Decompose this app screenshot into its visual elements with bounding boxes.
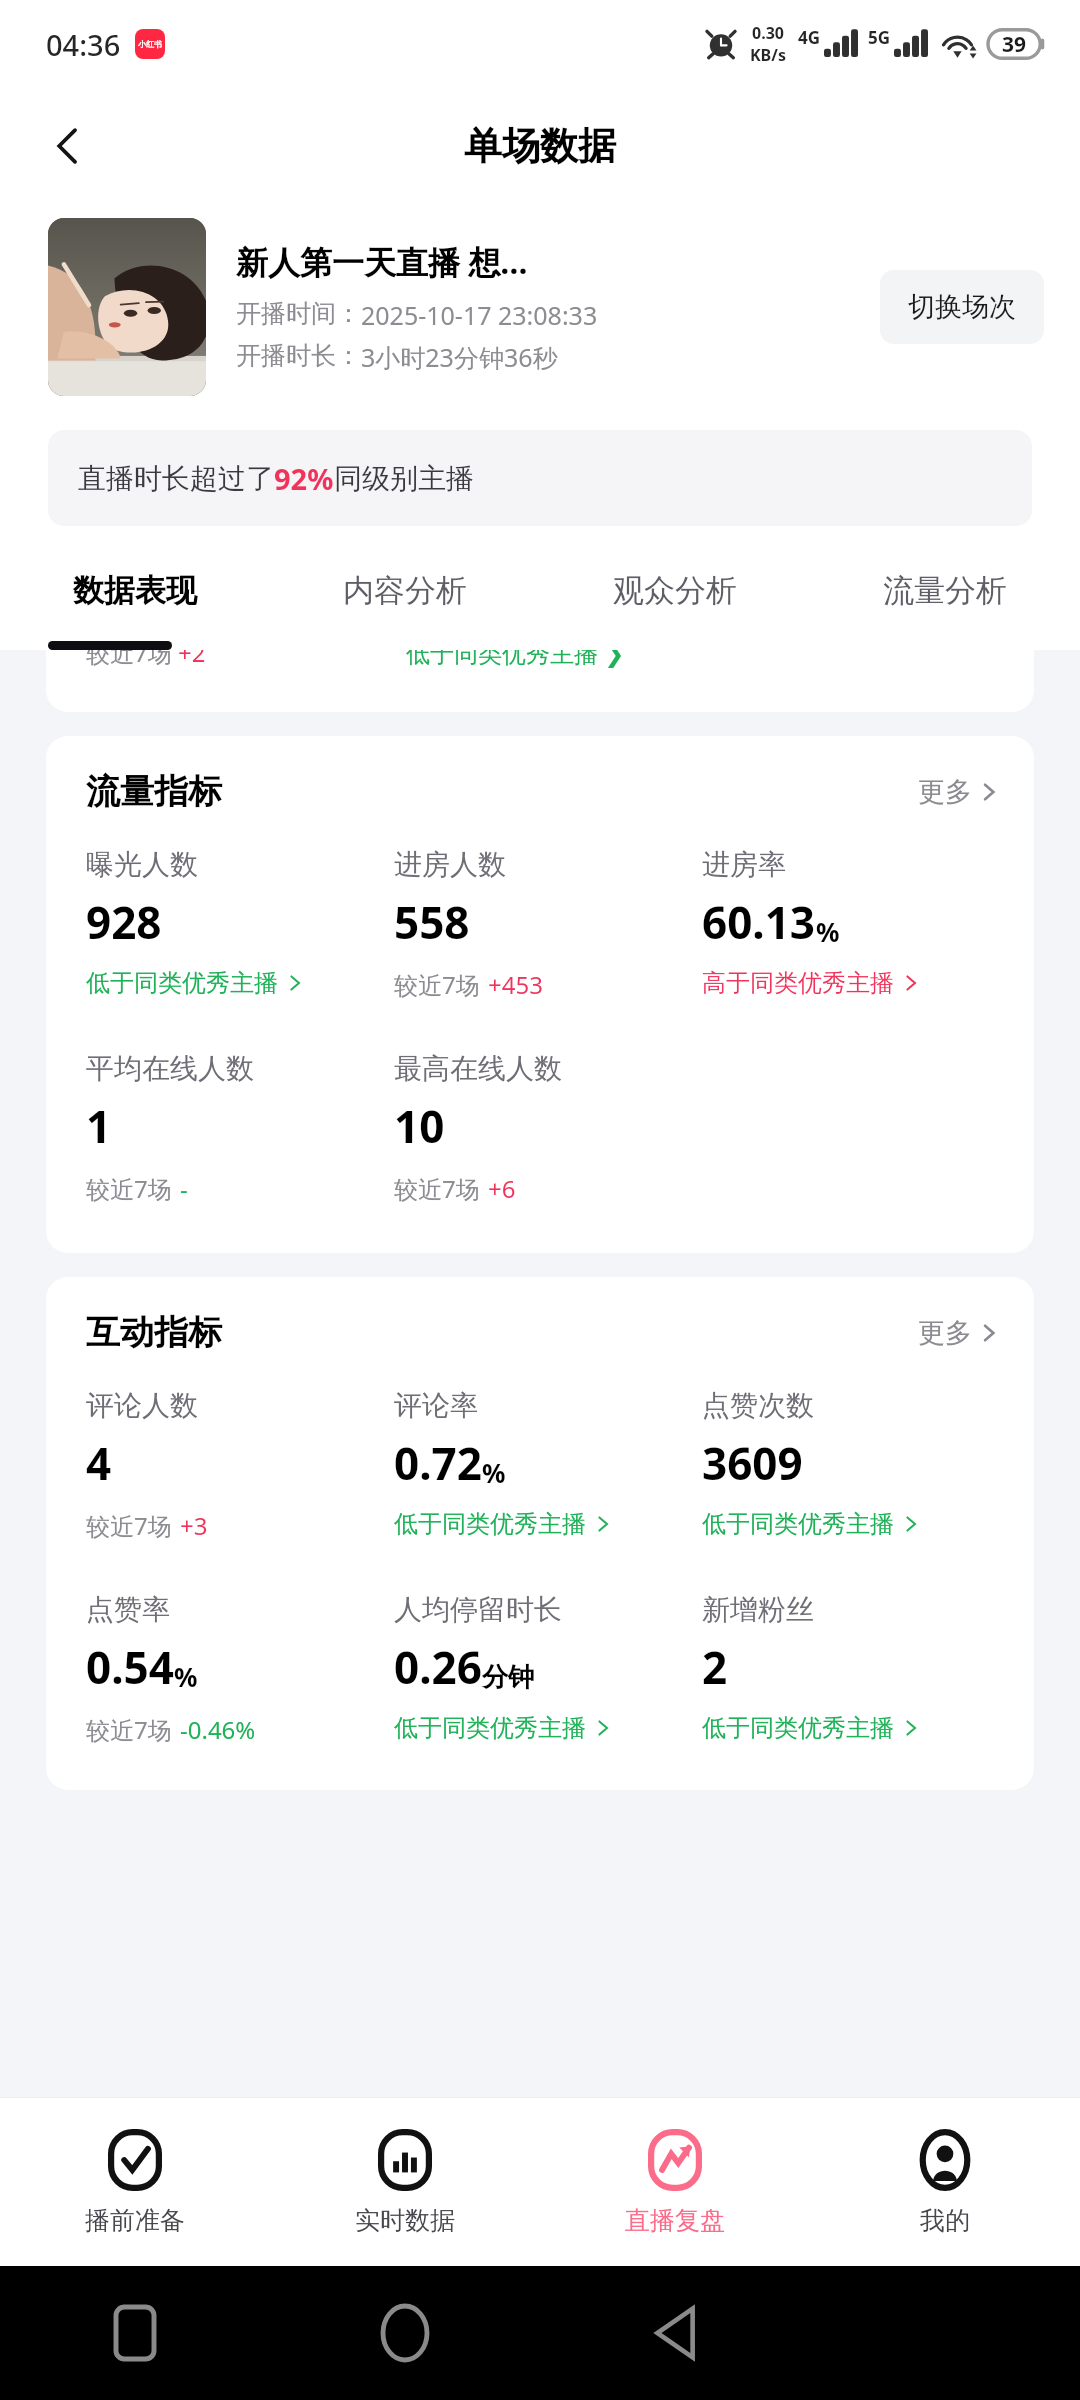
- staticText: 播前准备: [85, 2205, 185, 2236]
- staticText: +2: [178, 650, 206, 669]
- staticText: 开播时间：: [236, 298, 361, 329]
- button[interactable]: 返回: [30, 108, 106, 184]
- staticText: 5G: [868, 26, 891, 49]
- button[interactable]: Home: [270, 2266, 540, 2400]
- button[interactable]: 流量分析: [810, 544, 1080, 636]
- staticText: 新人第一天直播 想…: [236, 240, 528, 284]
- staticText: 高于同类优秀主播: [702, 968, 894, 998]
- staticText: 切换场次: [908, 290, 1016, 324]
- button[interactable]: 低于同类优秀主播: [86, 968, 305, 998]
- staticText: 2: [702, 1637, 728, 1697]
- staticText: 最高在线人数: [394, 1051, 562, 1086]
- staticText: -: [180, 1172, 188, 1205]
- staticText: 互动指标: [86, 1311, 222, 1354]
- staticText: 开播时长：: [236, 340, 361, 371]
- staticText: %: [482, 1455, 506, 1490]
- staticText: %: [816, 914, 840, 949]
- staticText: 新增粉丝: [702, 1592, 814, 1627]
- staticText: 数据表现: [73, 571, 197, 610]
- staticText: 直播时长超过了: [78, 461, 274, 496]
- button[interactable]: 高于同类优秀主播: [702, 968, 921, 998]
- staticText: 1: [86, 1096, 112, 1156]
- staticText: +6: [488, 1172, 516, 1205]
- button[interactable]: 低于同类优秀主播: [702, 1713, 921, 1743]
- staticText: 单场数据: [464, 122, 616, 170]
- staticText: 0.30: [752, 22, 784, 44]
- button[interactable]: 内容分析: [270, 544, 540, 636]
- staticText: 低于同类优秀主播: [394, 1509, 586, 1539]
- staticText: -0.46%: [180, 1713, 256, 1746]
- button[interactable]: 流量指标: [46, 736, 1034, 831]
- button[interactable]: Back: [540, 2266, 810, 2400]
- staticText: %: [174, 1659, 198, 1694]
- staticText: 观众分析: [613, 571, 737, 610]
- button[interactable]: 切换场次: [880, 270, 1044, 344]
- staticText: 内容分析: [343, 571, 467, 610]
- button[interactable]: 低于同类优秀主播: [702, 1509, 921, 1539]
- staticText: 流量分析: [883, 571, 1007, 610]
- button[interactable]: 互动指标: [46, 1277, 1034, 1372]
- staticText: 人均停留时长: [394, 1592, 562, 1627]
- staticText: 0.54: [86, 1637, 174, 1697]
- button[interactable]: 直播复盘: [540, 2098, 810, 2266]
- staticText: 60.13: [702, 892, 816, 952]
- staticText: +453: [488, 968, 543, 1001]
- button[interactable]: 低于同类优秀主播: [394, 1509, 613, 1539]
- staticText: 4G: [798, 26, 821, 49]
- button[interactable]: 数据表现: [0, 544, 270, 636]
- staticText: 流量指标: [86, 770, 222, 813]
- staticText: 558: [394, 892, 470, 952]
- staticText: 较近7场: [394, 968, 480, 1001]
- staticText: 39: [1002, 30, 1027, 59]
- staticText: 低于同类优秀主播 ❯: [406, 650, 625, 669]
- staticText: 直播复盘: [625, 2205, 725, 2236]
- staticText: 点赞次数: [702, 1388, 814, 1423]
- staticText: 2025-10-17 23:08:33: [361, 298, 598, 332]
- staticText: +3: [180, 1509, 208, 1542]
- staticText: 较近7场: [86, 650, 178, 669]
- staticText: 进房率: [702, 847, 786, 882]
- staticText: 实时数据: [355, 2205, 455, 2236]
- staticText: 我的: [920, 2205, 970, 2236]
- staticText: 0.26: [394, 1637, 482, 1697]
- button[interactable]: 我的: [810, 2098, 1080, 2266]
- staticText: 较近7场: [394, 1172, 480, 1205]
- staticText: 较近7场: [86, 1509, 172, 1542]
- staticText: 进房人数: [394, 847, 506, 882]
- button[interactable]: 低于同类优秀主播: [394, 1713, 613, 1743]
- button[interactable]: 观众分析: [540, 544, 810, 636]
- staticText: 04:36: [46, 25, 121, 64]
- staticText: 0.72: [394, 1433, 482, 1493]
- button[interactable]: Recents: [0, 2266, 270, 2400]
- staticText: 3609: [702, 1433, 803, 1493]
- staticText: 低于同类优秀主播: [86, 968, 278, 998]
- staticText: 评论率: [394, 1388, 478, 1423]
- staticText: 评论人数: [86, 1388, 198, 1423]
- staticText: 较近7场: [86, 1172, 172, 1205]
- staticText: 更多: [918, 1316, 972, 1350]
- staticText: 更多: [918, 775, 972, 809]
- staticText: 曝光人数: [86, 847, 198, 882]
- button[interactable]: [48, 218, 206, 396]
- staticText: 4: [86, 1433, 112, 1493]
- staticText: 平均在线人数: [86, 1051, 254, 1086]
- staticText: 小红书: [138, 39, 162, 49]
- staticText: 分钟: [482, 1661, 534, 1694]
- staticText: 10: [394, 1096, 445, 1156]
- staticText: 低于同类优秀主播: [702, 1509, 894, 1539]
- button[interactable]: 实时数据: [270, 2098, 540, 2266]
- staticText: 92%: [274, 459, 334, 498]
- staticText: 同级别主播: [334, 461, 474, 496]
- staticText: 低于同类优秀主播: [702, 1713, 894, 1743]
- staticText: 较近7场: [86, 1713, 172, 1746]
- staticText: 3小时23分钟36秒: [361, 340, 558, 374]
- staticText: 928: [86, 892, 162, 952]
- staticText: 点赞率: [86, 1592, 170, 1627]
- staticText: KB/s: [750, 44, 786, 66]
- button[interactable]: 播前准备: [0, 2098, 270, 2266]
- button[interactable]: 直播时长超过了: [48, 430, 1032, 526]
- staticText: 低于同类优秀主播: [394, 1713, 586, 1743]
